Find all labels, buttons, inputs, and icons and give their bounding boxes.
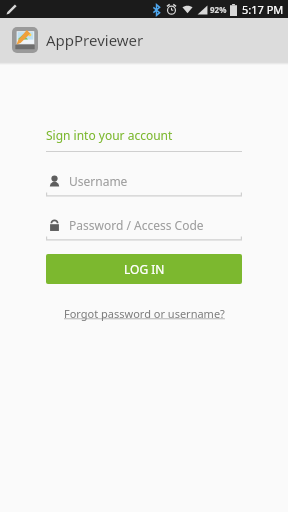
staticText: AppPreviewer	[46, 30, 144, 50]
button[interactable]: Password	[46, 214, 242, 242]
staticText: 92%	[210, 4, 227, 15]
button[interactable]: Username	[46, 170, 242, 198]
other: Password	[48, 219, 61, 232]
button[interactable]: Forgot password or username?	[60, 302, 229, 325]
button[interactable]: LOG IN	[46, 254, 242, 284]
staticText: 5:17 PM	[242, 2, 284, 17]
other: Username	[48, 175, 61, 188]
staticText: Username	[69, 173, 128, 189]
staticText: Password / Access Code	[69, 217, 204, 233]
staticText: Forgot password or username?	[64, 306, 225, 321]
staticText: Sign into your account	[46, 127, 173, 143]
staticText: LOG IN	[124, 261, 165, 277]
